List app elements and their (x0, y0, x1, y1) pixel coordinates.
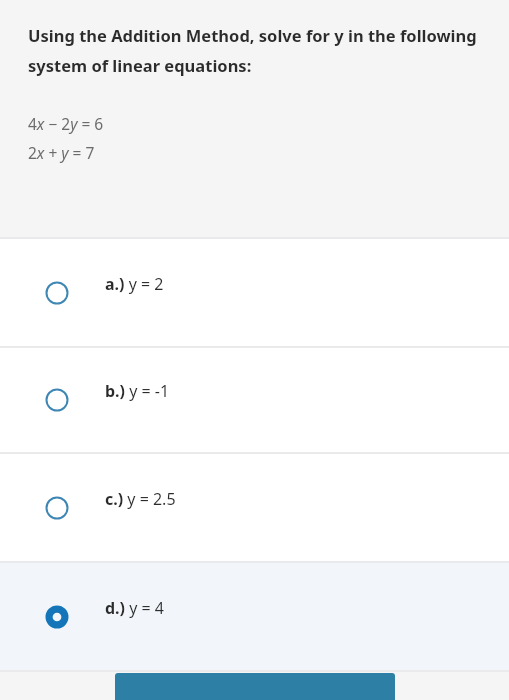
staticText: b.) y = -1 (105, 380, 170, 402)
button[interactable]: Submit answer (115, 673, 395, 700)
staticText: c.) y = 2.5 (105, 488, 176, 510)
staticText: Using the Addition Method, solve for y i… (28, 24, 483, 77)
staticText: 4x − 2y = 6 (28, 113, 104, 134)
staticText: 2x + y = 7 (28, 142, 95, 163)
button[interactable]: d.) y = 4 (0, 563, 509, 670)
button[interactable]: a.) y = 2 (0, 239, 509, 346)
button[interactable]: c.) y = 2.5 (0, 454, 509, 561)
staticText: a.) y = 2 (105, 273, 164, 295)
button[interactable]: b.) y = -1 (0, 348, 509, 452)
staticText: d.) y = 4 (105, 597, 164, 619)
